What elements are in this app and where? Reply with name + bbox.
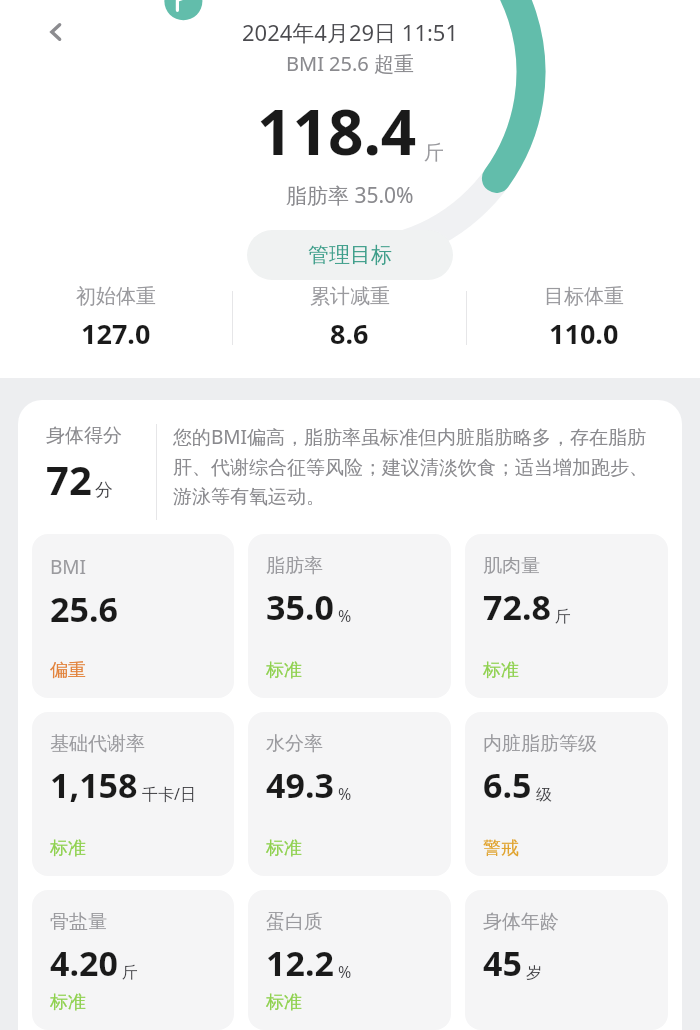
staticText: 累计减重 [310,284,390,309]
staticText: 脂肪率 [266,554,323,578]
button[interactable]: 蛋白质 [248,890,451,1030]
staticText: % [338,961,352,983]
staticText: 6.5 [483,762,532,808]
button[interactable]: 水分率 [248,712,451,876]
staticText: 基础代谢率 [50,732,145,756]
staticText: 45 [483,940,522,986]
button[interactable]: 骨盐量 [32,890,234,1030]
staticText: 12.2 [266,940,334,986]
staticText: 身体年龄 [483,910,559,934]
button[interactable]: 身体年龄 [465,890,668,1030]
button[interactable]: 肌肉量 [465,534,668,698]
staticText: 身体得分 [46,424,122,448]
staticText: 斤 [555,607,571,627]
staticText: 初始体重 [76,284,156,309]
staticText: 标准 [50,991,86,1014]
button[interactable]: 脂肪率 [248,534,451,698]
staticText: 偏重 [50,659,86,682]
staticText: 骨盐量 [50,910,107,934]
staticText: 目标体重 [544,284,624,309]
button[interactable]: 目标体重 [467,280,700,356]
button[interactable]: 管理目标 [247,230,453,280]
staticText: 斤 [424,140,444,165]
staticText: 49.3 [266,762,334,808]
button[interactable]: 内脏脂肪等级 [465,712,668,876]
staticText: 标准 [266,837,302,860]
staticText: % [338,783,352,805]
staticText: 标准 [266,659,302,682]
staticText: 肌肉量 [483,554,540,578]
staticText: 管理目标 [308,242,392,268]
staticText: 标准 [266,991,302,1014]
staticText: 标准 [50,837,86,860]
button[interactable]: BMI [32,534,234,698]
staticText: BMI [50,554,87,580]
staticText: 岁 [526,963,542,983]
staticText: 127.0 [81,315,151,352]
staticText: 蛋白质 [266,910,323,934]
staticText: 72 [46,452,92,506]
staticText: 1,158 [50,762,138,808]
button[interactable]: Back [34,10,78,54]
staticText: 35.0 [266,584,334,630]
staticText: 内脏脂肪等级 [483,732,597,756]
staticText: 标准 [483,659,519,682]
staticText: 斤 [122,963,138,983]
staticText: 110.0 [549,315,619,352]
staticText: 4.20 [50,940,118,986]
staticText: 脂肪率 35.0% [286,181,414,210]
staticText: 警戒 [483,837,519,860]
staticText: 水分率 [266,732,323,756]
button[interactable]: 累计减重 [233,280,466,356]
staticText: 72.8 [483,584,551,630]
staticText: 您的BMI偏高，脂肪率虽标准但内脏脂肪略多，存在脂肪肝、代谢综合征等风险；建议清… [173,424,660,508]
button[interactable]: 初始体重 [0,280,232,356]
staticText: 千卡/日 [142,783,196,805]
staticText: 8.6 [330,315,369,352]
staticText: 25.6 [50,586,118,632]
staticText: 2024年4月29日 11:51 [242,17,459,47]
staticText: % [338,605,352,627]
staticText: BMI 25.6 超重 [286,50,414,77]
staticText: 分 [95,479,113,502]
button[interactable]: 基础代谢率 [32,712,234,876]
staticText: 118.4 [257,89,417,173]
staticText: 级 [536,785,552,805]
